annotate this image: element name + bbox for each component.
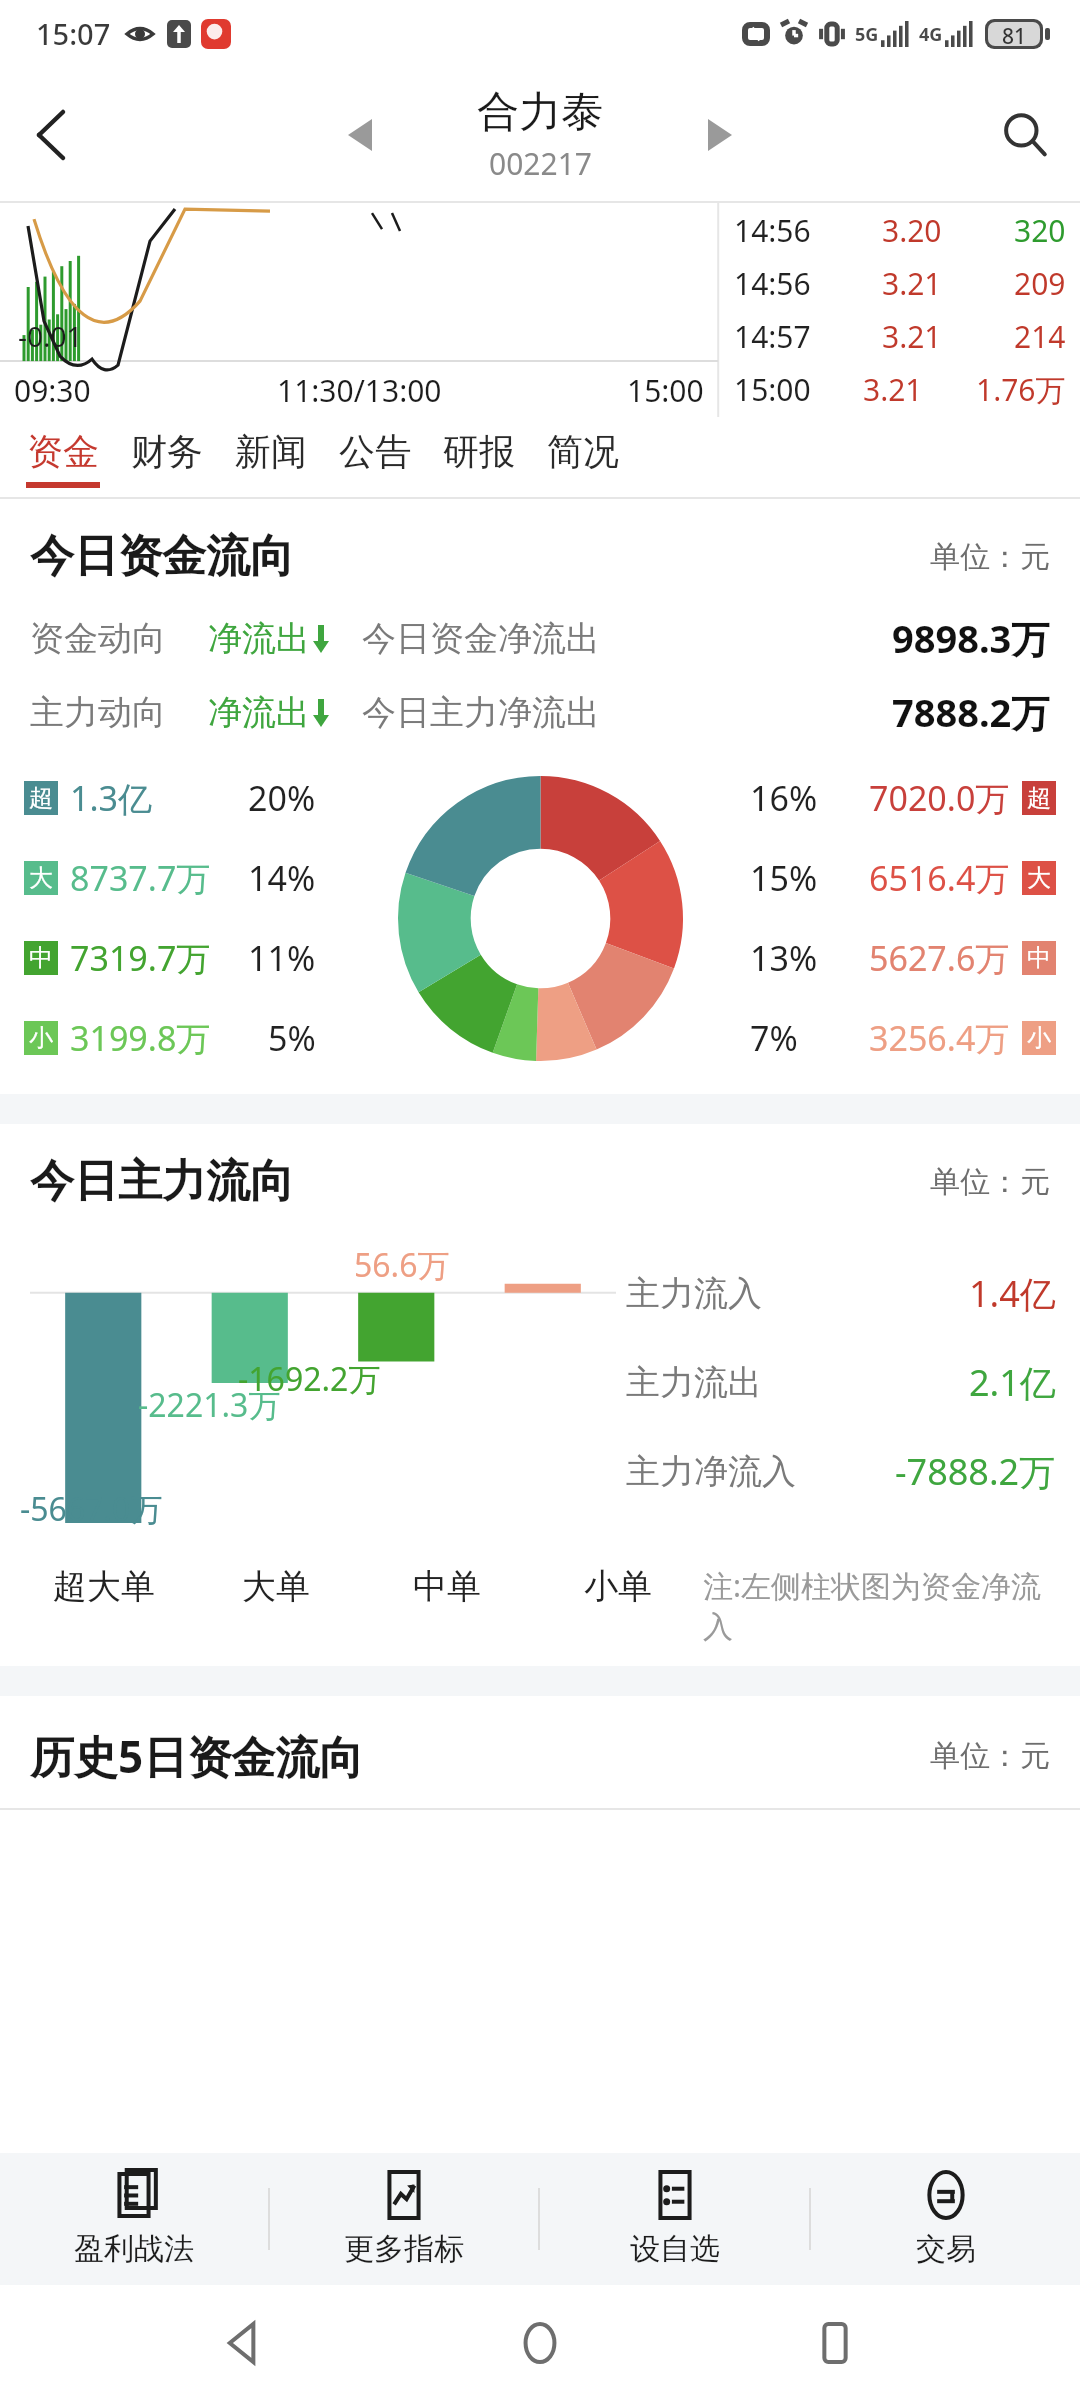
staticText: 交易 — [916, 2230, 976, 2268]
staticText: 09:30 — [14, 370, 91, 411]
staticText: 大单 — [242, 1565, 310, 1608]
staticText: 中单 — [413, 1565, 481, 1608]
staticText: 14:56 — [734, 263, 811, 304]
button[interactable]: 15% — [750, 855, 1056, 901]
button[interactable]: 交易 — [811, 2153, 1080, 2285]
staticText: 4G — [919, 22, 943, 47]
staticText: 214 — [1014, 316, 1066, 357]
staticText: 209 — [1014, 263, 1066, 304]
button[interactable]: Home — [490, 2293, 590, 2393]
staticText: -0.01 — [18, 317, 83, 355]
button[interactable]: 大 — [24, 855, 330, 901]
staticText: 主力流出 — [626, 1361, 762, 1404]
staticText: 9898.3万 — [892, 612, 1050, 664]
staticText: 大 — [29, 863, 53, 893]
button[interactable]: 16% — [750, 775, 1056, 821]
staticText: 小单 — [584, 1565, 652, 1608]
staticText: 今日主力净流出 — [362, 691, 600, 734]
button[interactable]: 小 — [24, 1015, 330, 1061]
staticText: 小 — [1027, 1023, 1051, 1053]
button[interactable]: 主力净流入 — [626, 1447, 1056, 1496]
staticText: 净流出 — [208, 617, 310, 660]
staticText: 单位：元 — [930, 1163, 1050, 1201]
button[interactable]: 新闻 — [230, 429, 312, 488]
staticText: 主力流入 — [626, 1272, 762, 1315]
staticText: 7888.2万 — [892, 686, 1050, 738]
staticText: 财务 — [131, 429, 203, 474]
staticText: 单位：元 — [930, 538, 1050, 576]
button[interactable]: 合力泰 — [400, 86, 680, 184]
staticText: 超大单 — [53, 1565, 155, 1608]
staticText: 主力动向 — [30, 691, 166, 734]
staticText: 更多指标 — [344, 2230, 464, 2268]
staticText: 公告 — [339, 429, 411, 474]
button[interactable]: 中 — [24, 935, 330, 981]
staticText: 3.21 — [882, 316, 942, 357]
staticText: 3256.4万 — [869, 1015, 1010, 1061]
staticText: 3.21 — [882, 263, 942, 304]
staticText: 今日资金流向 — [30, 529, 294, 584]
staticText: 中 — [29, 943, 53, 973]
staticText: 3199.8万 — [70, 1015, 211, 1061]
button[interactable]: 研报 — [438, 429, 520, 488]
button[interactable]: 资金 — [22, 429, 104, 488]
button[interactable]: 超 — [24, 775, 330, 821]
button[interactable]: 13% — [750, 935, 1056, 981]
button[interactable]: Recents — [785, 2293, 885, 2393]
staticText: -7888.2万 — [895, 1447, 1056, 1496]
staticText: -2221.3万 — [138, 1383, 281, 1427]
staticText: 净流出 — [208, 691, 310, 734]
staticText: 单位：元 — [930, 1737, 1050, 1775]
button[interactable]: 资金动向 — [30, 612, 1050, 664]
staticText: 7% — [750, 1015, 798, 1061]
staticText: 15:07 — [36, 14, 111, 53]
button[interactable]: 盈利战法 — [0, 2153, 268, 2285]
staticText: 大 — [1027, 863, 1051, 893]
staticText: 14:56 — [734, 210, 811, 251]
staticText: 今日主力流向 — [30, 1154, 294, 1209]
button[interactable]: 主力动向 — [30, 686, 1050, 738]
staticText: 7319.7万 — [70, 935, 211, 981]
button[interactable]: 财务 — [126, 429, 208, 488]
button[interactable]: 7% — [750, 1015, 1056, 1061]
staticText: 81 — [1002, 22, 1027, 46]
staticText: 今日资金净流出 — [362, 617, 600, 660]
staticText: 1.76万 — [976, 369, 1066, 410]
staticText: 11% — [248, 935, 316, 981]
staticText: 56.6万 — [354, 1243, 450, 1287]
staticText: 1.3亿 — [70, 775, 153, 821]
staticText: 13% — [750, 935, 818, 981]
button[interactable]: Next stock — [680, 95, 760, 175]
staticText: 简况 — [547, 429, 619, 474]
staticText: 历史5日资金流向 — [30, 1726, 364, 1786]
button[interactable]: Search — [970, 80, 1080, 190]
button[interactable]: 主力流入 — [626, 1269, 1056, 1318]
button[interactable]: 简况 — [542, 429, 624, 488]
staticText: 5% — [268, 1015, 316, 1061]
staticText: 超 — [1027, 783, 1051, 813]
staticText: 3.20 — [882, 210, 942, 251]
staticText: 6516.4万 — [869, 855, 1010, 901]
staticText: 注:左侧柱状图为资金净流入 — [703, 1565, 1062, 1646]
staticText: 资金动向 — [30, 617, 166, 660]
staticText: -5667.0万 — [20, 1487, 163, 1531]
staticText: 3.21 — [863, 369, 923, 410]
staticText: 320 — [1014, 210, 1066, 251]
staticText: 小 — [29, 1023, 53, 1053]
button[interactable]: 更多指标 — [270, 2153, 538, 2285]
button[interactable]: Back — [195, 2293, 295, 2393]
button[interactable]: 主力流出 — [626, 1358, 1056, 1407]
staticText: 新闻 — [235, 429, 307, 474]
staticText: 设自选 — [630, 2230, 720, 2268]
button[interactable]: Back — [0, 85, 100, 185]
staticText: 合力泰 — [477, 86, 603, 139]
button[interactable]: Previous stock — [320, 95, 400, 175]
staticText: 15% — [750, 855, 818, 901]
staticText: 盈利战法 — [74, 2230, 194, 2268]
button[interactable]: 设自选 — [540, 2153, 809, 2285]
staticText: 1.4亿 — [969, 1269, 1056, 1318]
staticText: 002217 — [489, 143, 592, 184]
staticText: 资金 — [27, 429, 99, 474]
staticText: 16% — [750, 775, 818, 821]
button[interactable]: 公告 — [334, 429, 416, 488]
